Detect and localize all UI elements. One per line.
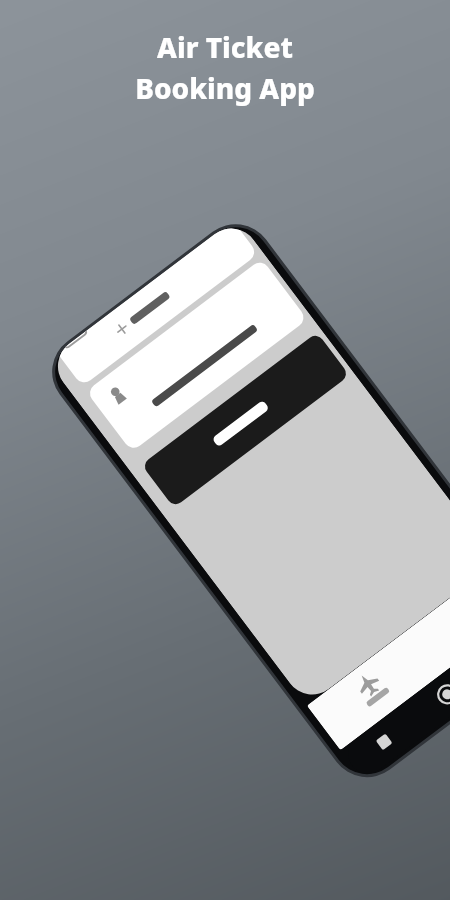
staticText: Air Ticket (157, 28, 293, 66)
button[interactable]: Air ticket booking app phone preview (0, 0, 450, 900)
staticText: Booking App (135, 69, 315, 107)
